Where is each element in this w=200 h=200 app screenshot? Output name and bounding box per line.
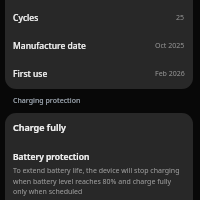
staticText: Battery protection	[13, 151, 90, 163]
button[interactable]: Manufacture date	[5, 32, 193, 60]
button[interactable]: Cycles	[5, 4, 193, 32]
button[interactable]: Charge fully	[5, 113, 193, 140]
staticText: Charging protection	[13, 96, 81, 106]
staticText: Charge fully	[13, 121, 66, 133]
staticText: First use	[13, 68, 48, 80]
button[interactable]: First use	[5, 60, 193, 88]
staticText: 25	[176, 13, 185, 23]
staticText: To extend battery life, the device will …	[13, 166, 183, 196]
staticText: Manufacture date	[13, 40, 86, 52]
button[interactable]: Battery protection	[5, 151, 193, 196]
staticText: Oct 2025	[155, 41, 185, 51]
staticText: Feb 2026	[155, 69, 185, 79]
staticText: Cycles	[13, 12, 39, 24]
